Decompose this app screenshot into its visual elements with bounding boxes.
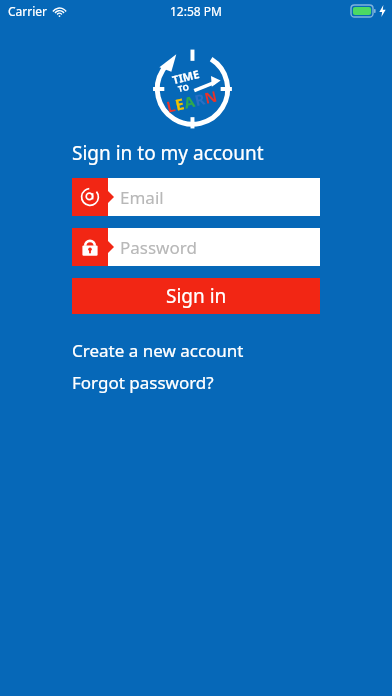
staticText: A: [182, 91, 197, 113]
staticText: E: [173, 93, 186, 115]
staticText: TIME: [171, 66, 201, 87]
staticText: Sign in to my account: [72, 140, 264, 168]
staticText: Password: [120, 236, 197, 259]
button[interactable]: Create a new account: [72, 336, 320, 364]
staticText: 12:58 PM: [170, 3, 222, 19]
button[interactable]: Forgot password?: [72, 368, 320, 396]
button[interactable]: Email: [72, 178, 320, 216]
staticText: Carrier: [8, 3, 48, 19]
staticText: Create a new account: [72, 339, 244, 362]
staticText: L: [164, 95, 178, 117]
staticText: Forgot password?: [72, 371, 214, 394]
button[interactable]: Password: [72, 228, 320, 266]
staticText: TO: [177, 81, 190, 94]
staticText: N: [202, 85, 220, 108]
staticText: Sign in: [166, 283, 227, 309]
other: Email: [80, 187, 100, 207]
staticText: Email: [120, 186, 164, 209]
other: Password: [80, 237, 100, 257]
button[interactable]: Sign in: [72, 278, 320, 314]
staticText: R: [193, 88, 207, 110]
